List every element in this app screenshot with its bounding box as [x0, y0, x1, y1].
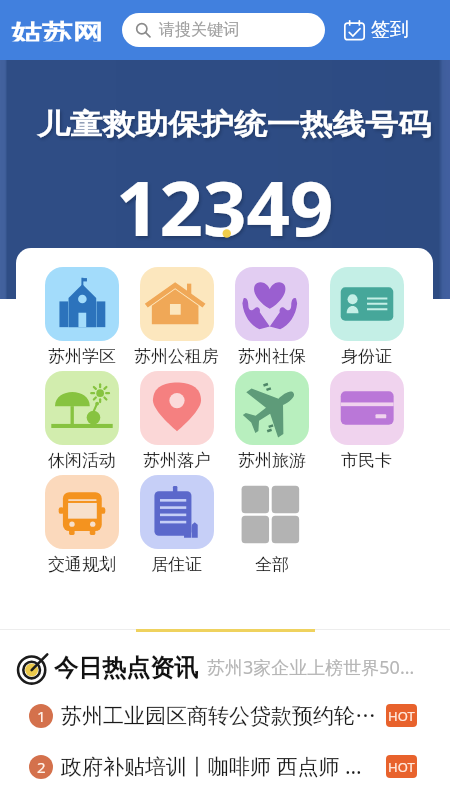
staticText: 请搜关键词: [159, 20, 239, 40]
staticText: 市民卡: [341, 450, 392, 471]
button[interactable]: 今日热点资讯: [0, 633, 450, 690]
button[interactable]: 全部: [224, 475, 319, 575]
staticText: 2: [37, 757, 46, 777]
staticText: 苏州公租房: [134, 346, 219, 367]
staticText: 苏州落户: [143, 450, 211, 471]
button[interactable]: 1: [0, 690, 450, 741]
button[interactable]: 居住证: [129, 475, 224, 575]
button[interactable]: 苏州落户: [129, 371, 224, 471]
staticText: 苏州工业园区商转公贷款预约轮候办理: [61, 703, 377, 729]
staticText: 苏州学区: [48, 346, 116, 367]
staticText: 全部: [255, 554, 289, 575]
staticText: 交通规划: [48, 554, 116, 575]
button[interactable]: 苏州社保: [224, 267, 319, 367]
button[interactable]: 签到: [339, 14, 413, 46]
staticText: 儿童救助保护统一热线号码: [37, 107, 431, 143]
staticText: 12349: [116, 155, 334, 259]
staticText: HOT: [388, 707, 415, 725]
staticText: 苏州3家企业上榜世界50…: [207, 655, 415, 680]
staticText: 身份证: [341, 346, 392, 367]
button[interactable]: 苏州学区: [34, 267, 129, 367]
button[interactable]: 交通规划: [34, 475, 129, 575]
button[interactable]: 苏州公租房: [129, 267, 224, 367]
staticText: 苏州社保: [238, 346, 306, 367]
staticText: 居住证: [151, 554, 202, 575]
button[interactable]: 苏州旅游: [224, 371, 319, 471]
staticText: 1: [37, 706, 46, 726]
staticText: 苏州旅游: [238, 450, 306, 471]
staticText: 休闲活动: [48, 450, 116, 471]
button[interactable]: 休闲活动: [34, 371, 129, 471]
staticText: HOT: [388, 758, 415, 776]
button[interactable]: 市民卡: [319, 371, 414, 471]
button[interactable]: 姑苏网 首页: [11, 15, 105, 45]
staticText: 签到: [371, 18, 409, 42]
button[interactable]: 身份证: [319, 267, 414, 367]
staticText: 姑苏网: [11, 19, 103, 41]
button[interactable]: 2: [0, 741, 450, 792]
button[interactable]: 请搜关键词: [122, 13, 325, 47]
staticText: 政府补贴培训丨咖啡师 西点师 收费标准公布: [61, 752, 377, 781]
staticText: 今日热点资讯: [54, 653, 198, 683]
